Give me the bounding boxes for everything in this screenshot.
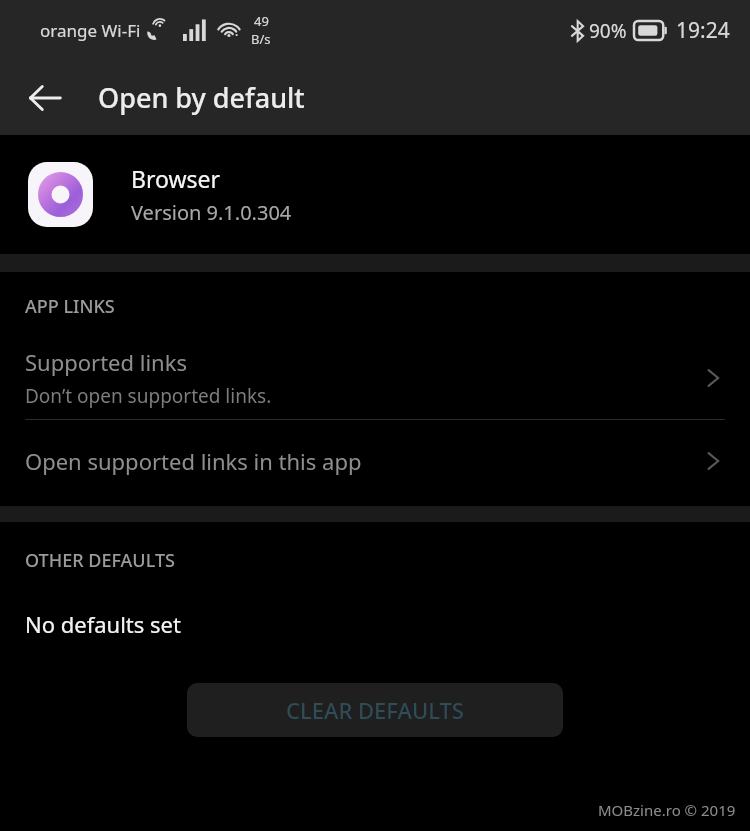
staticText: Version 9.1.0.304 — [131, 199, 292, 226]
staticText: B/s — [251, 30, 271, 48]
button[interactable]: Back — [18, 71, 72, 125]
staticText: CLEAR DEFAULTS — [286, 695, 464, 725]
staticText: OTHER DEFAULTS — [25, 548, 175, 573]
staticText: orange Wi-Fi — [40, 19, 141, 42]
staticText: APP LINKS — [25, 294, 115, 319]
staticText: No defaults set — [25, 609, 181, 639]
staticText: Browser — [131, 163, 221, 194]
staticText: 49 — [254, 12, 269, 30]
button[interactable]: CLEAR DEFAULTS — [187, 683, 563, 737]
button[interactable]: Browser — [0, 135, 750, 254]
staticText: 19:24 — [676, 16, 730, 45]
button[interactable]: Supported links — [0, 337, 750, 419]
staticText: MOBzine.ro © 2019 — [598, 800, 736, 820]
staticText: Supported links — [25, 347, 187, 377]
staticText: Open by default — [98, 79, 305, 116]
staticText: Don’t open supported links. — [25, 383, 272, 409]
staticText: 90% — [589, 18, 627, 44]
staticText: Open supported links in this app — [25, 446, 362, 476]
button[interactable]: Open supported links in this app — [0, 420, 750, 502]
